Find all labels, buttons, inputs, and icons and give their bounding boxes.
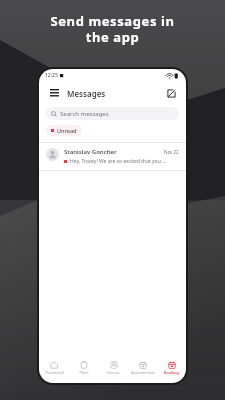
button[interactable]: Unread <box>46 125 82 136</box>
button[interactable]: Plans <box>69 357 99 378</box>
staticText: Groups <box>107 370 120 375</box>
staticText: 12:25 <box>45 72 58 79</box>
staticText: Unread <box>57 127 77 134</box>
button[interactable]: Stanislav Goncher <box>39 143 186 170</box>
staticText: Stanislav Goncher <box>64 148 117 156</box>
button[interactable]: Search messages <box>46 107 179 120</box>
button[interactable]: Dashboard <box>39 357 69 378</box>
staticText: Search messages <box>60 110 109 118</box>
staticText: Plans <box>79 370 89 375</box>
staticText: Hey, Tracey! We are so excited that you … <box>70 158 167 165</box>
button[interactable]: Menu <box>47 86 61 100</box>
staticText: Appointments <box>131 370 155 375</box>
button[interactable]: Groups <box>99 357 128 378</box>
button[interactable]: Compose message <box>164 86 178 100</box>
staticText: Dashboard <box>45 370 64 375</box>
button[interactable]: Appointments <box>128 357 157 378</box>
staticText: Nov 22 <box>164 149 179 155</box>
staticText: Messages <box>67 88 106 99</box>
staticText: Send messages in the app <box>50 12 175 45</box>
button[interactable]: Booking <box>157 357 186 378</box>
staticText: Booking <box>164 370 179 375</box>
